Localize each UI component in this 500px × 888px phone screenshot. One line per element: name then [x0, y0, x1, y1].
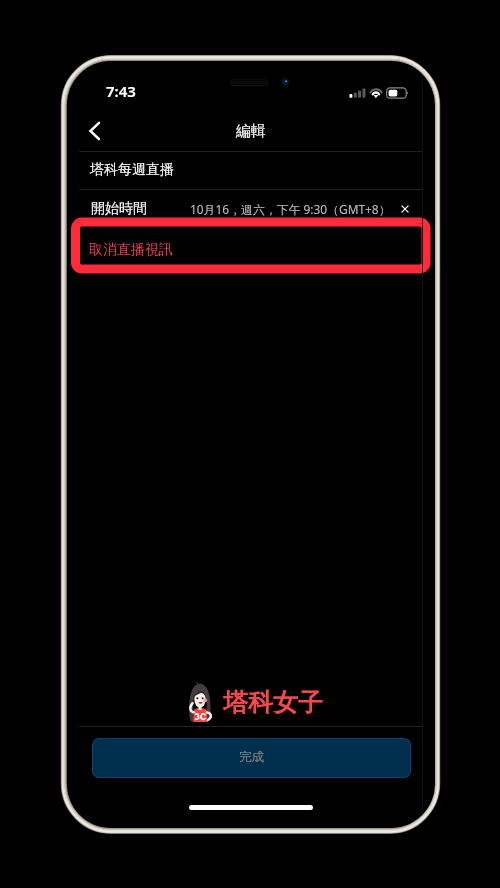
staticText: 取消直播視訊: [89, 241, 173, 259]
button[interactable]: 塔科每週直播: [67, 151, 435, 190]
staticText: 7:43: [106, 81, 136, 101]
button[interactable]: 取消直播視訊: [67, 228, 435, 267]
staticText: 塔科女子: [223, 687, 323, 718]
staticText: 10月16，週六，下午 9:30（GMT+8）: [190, 201, 391, 217]
button[interactable]: Clear start time: [398, 202, 412, 216]
staticText: 塔科每週直播: [90, 161, 174, 179]
staticText: 開始時間: [91, 200, 147, 218]
staticText: 完成: [239, 749, 265, 765]
staticText: 編輯: [236, 122, 266, 141]
button[interactable]: Back: [85, 117, 111, 145]
button[interactable]: 完成: [92, 738, 411, 778]
button[interactable]: 開始時間: [67, 189, 435, 228]
